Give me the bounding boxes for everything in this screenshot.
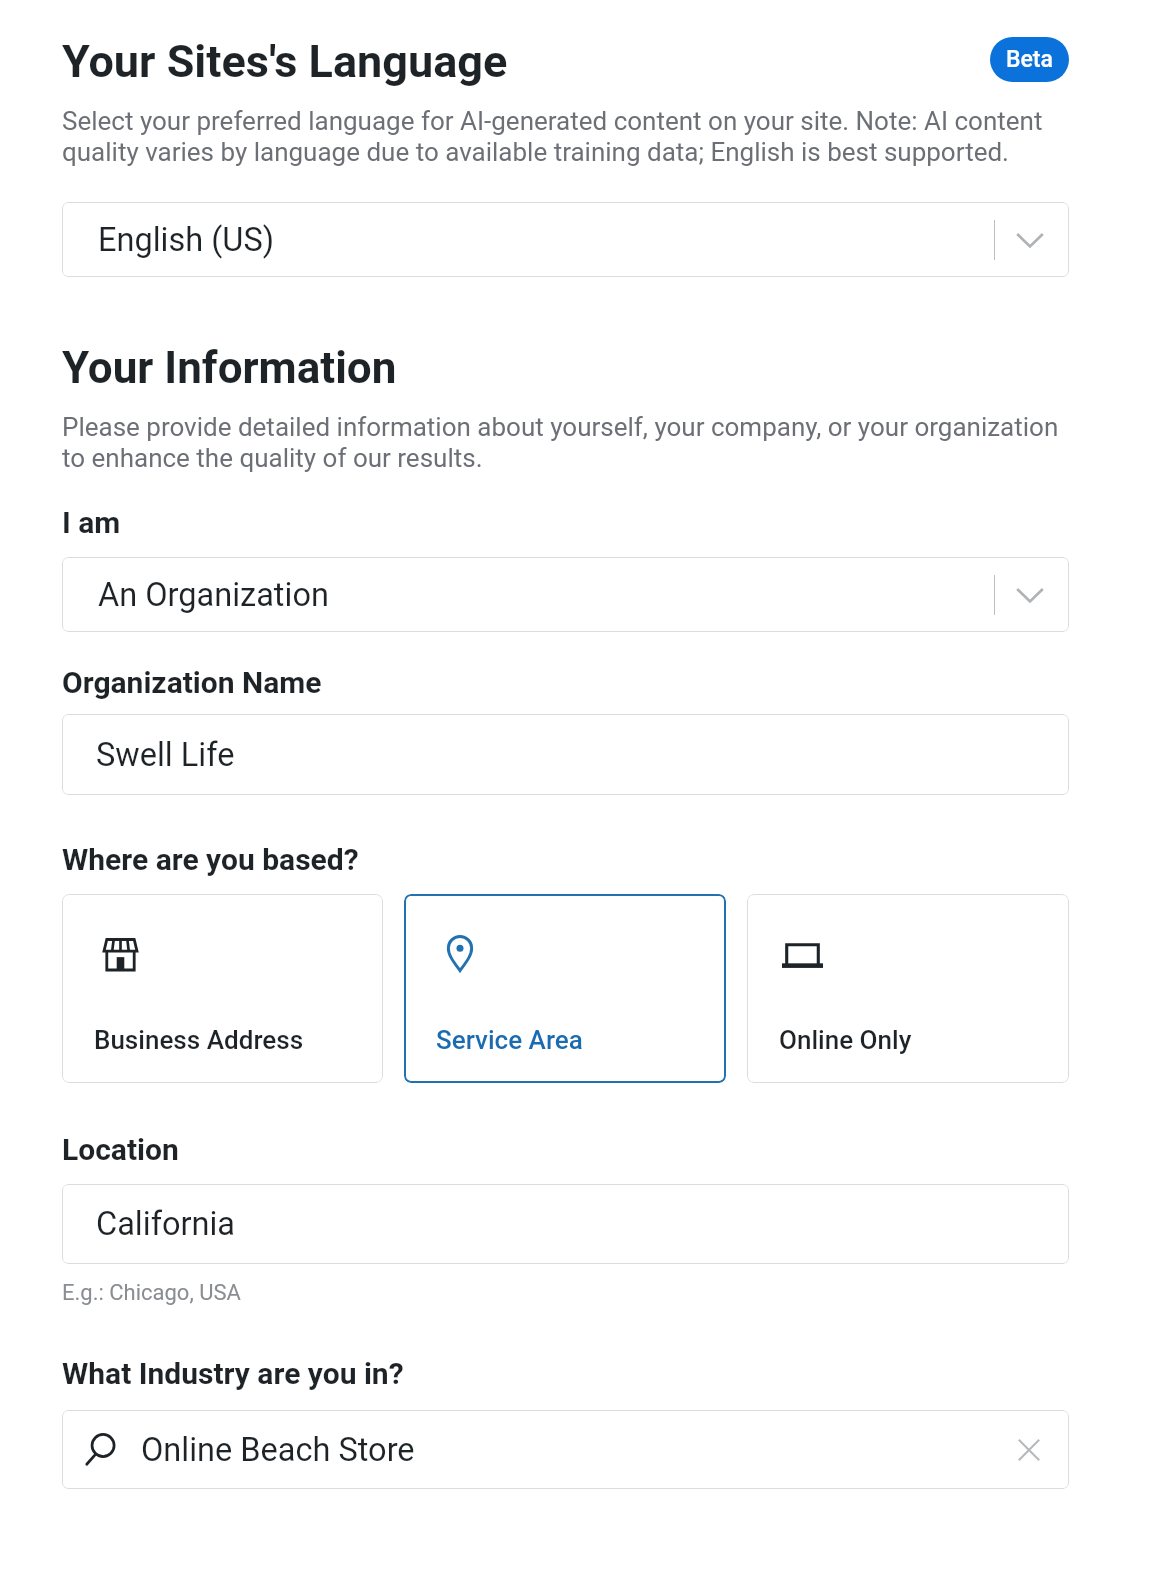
staticText: Your Information <box>62 342 397 394</box>
button[interactable]: California <box>62 1184 1069 1264</box>
button[interactable]: An Organization <box>62 557 1069 632</box>
staticText: Beta <box>1006 46 1053 73</box>
button[interactable]: Service Area <box>404 894 726 1083</box>
button[interactable]: Business Address <box>62 894 383 1083</box>
button[interactable]: Beta <box>990 37 1069 82</box>
staticText: An Organization <box>98 576 329 614</box>
staticText: Service Area <box>436 1025 583 1055</box>
staticText: Your Sites's Language <box>62 35 508 88</box>
staticText: Select your preferred language for AI-ge… <box>62 105 1069 167</box>
button[interactable]: Swell Life <box>62 714 1069 795</box>
button[interactable]: English (US) <box>62 202 1069 277</box>
other: Open English (US) menu <box>1014 224 1046 256</box>
button[interactable]: Online Only <box>747 894 1069 1083</box>
staticText: What Industry are you in? <box>62 1356 404 1391</box>
staticText: I am <box>62 505 121 540</box>
staticText: Online Beach Store <box>141 1431 415 1469</box>
staticText: English (US) <box>98 221 275 259</box>
staticText: Please provide detailed information abou… <box>62 411 1069 473</box>
staticText: California <box>96 1205 236 1243</box>
staticText: Online Only <box>779 1025 912 1055</box>
other: Open An Organization menu <box>1014 579 1046 611</box>
staticText: Swell Life <box>96 736 235 774</box>
staticText: Location <box>62 1132 179 1167</box>
other: Clear <box>1014 1435 1044 1465</box>
button[interactable]: Online Beach Store <box>62 1410 1069 1489</box>
staticText: E.g.: Chicago, USA <box>62 1280 241 1306</box>
staticText: Business Address <box>94 1025 304 1055</box>
staticText: Where are you based? <box>62 842 359 877</box>
staticText: Organization Name <box>62 665 322 700</box>
